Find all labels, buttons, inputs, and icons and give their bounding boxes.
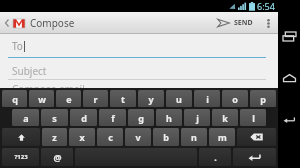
button[interactable]: s: [41, 109, 68, 126]
button[interactable]: i: [194, 90, 220, 107]
button[interactable]: @: [41, 148, 73, 166]
staticText: v: [135, 131, 141, 143]
staticText: o: [232, 93, 238, 105]
staticText: z: [52, 131, 57, 143]
button[interactable]: Subject: [0, 63, 278, 79]
button[interactable]: j: [184, 109, 210, 126]
button[interactable]: f: [99, 109, 126, 126]
staticText: To: [12, 39, 23, 53]
staticText: u: [176, 93, 182, 105]
button[interactable]: Recents: [279, 28, 299, 44]
staticText: j: [196, 112, 199, 124]
button[interactable]: v: [125, 128, 151, 146]
button[interactable]: Backspace: [237, 128, 276, 146]
button[interactable]: c: [97, 128, 123, 146]
button[interactable]: y: [138, 90, 164, 107]
button[interactable]: Space: [75, 148, 197, 166]
button[interactable]: r: [83, 90, 108, 107]
button[interactable]: p: [250, 90, 276, 107]
button[interactable]: More options: [258, 12, 278, 34]
button[interactable]: q: [2, 90, 27, 107]
button[interactable]: SEND: [212, 12, 258, 34]
staticText: c: [108, 131, 113, 143]
staticText: .: [214, 151, 217, 163]
staticText: Subject: [12, 64, 47, 78]
staticText: x: [79, 131, 85, 143]
button[interactable]: Compose email: [0, 82, 278, 88]
staticText: e: [66, 93, 72, 105]
staticText: s: [52, 112, 57, 124]
button[interactable]: x: [69, 128, 95, 146]
button[interactable]: a: [12, 109, 39, 126]
staticText: ?123: [14, 153, 28, 161]
button[interactable]: m: [209, 128, 235, 146]
button[interactable]: Shift: [2, 128, 40, 146]
button[interactable]: z: [42, 128, 67, 146]
button[interactable]: e: [56, 90, 81, 107]
staticText: Compose email: [12, 82, 85, 88]
staticText: Compose: [30, 16, 75, 30]
staticText: h: [166, 112, 172, 124]
staticText: q: [12, 93, 18, 105]
staticText: t: [121, 93, 125, 105]
button[interactable]: g: [128, 109, 154, 126]
staticText: d: [81, 112, 87, 124]
button[interactable]: n: [181, 128, 207, 146]
staticText: f: [111, 112, 115, 124]
staticText: l: [252, 112, 255, 124]
button[interactable]: Navigate up: [0, 12, 81, 34]
staticText: SEND: [234, 18, 253, 28]
staticText: @: [53, 151, 62, 163]
button[interactable]: w: [29, 90, 54, 107]
button[interactable]: u: [166, 90, 192, 107]
staticText: b: [163, 131, 169, 143]
button[interactable]: Home: [279, 70, 299, 86]
button[interactable]: ?123: [2, 148, 39, 166]
staticText: 6:54: [257, 0, 275, 12]
button[interactable]: .: [199, 148, 231, 166]
staticText: a: [23, 112, 29, 124]
button[interactable]: b: [153, 128, 179, 146]
staticText: m: [218, 131, 227, 143]
button[interactable]: To: [0, 34, 278, 57]
button[interactable]: o: [222, 90, 248, 107]
staticText: g: [138, 112, 144, 124]
staticText: n: [191, 131, 197, 143]
staticText: w: [38, 93, 46, 105]
staticText: p: [260, 93, 266, 105]
button[interactable]: t: [110, 90, 136, 107]
button[interactable]: d: [70, 109, 97, 126]
staticText: y: [148, 93, 154, 105]
staticText: r: [93, 93, 98, 105]
button[interactable]: Back: [279, 112, 299, 128]
button[interactable]: Enter: [233, 148, 276, 166]
staticText: k: [222, 112, 228, 124]
button[interactable]: l: [240, 109, 266, 126]
button[interactable]: k: [212, 109, 238, 126]
button[interactable]: h: [156, 109, 182, 126]
staticText: i: [206, 93, 209, 105]
